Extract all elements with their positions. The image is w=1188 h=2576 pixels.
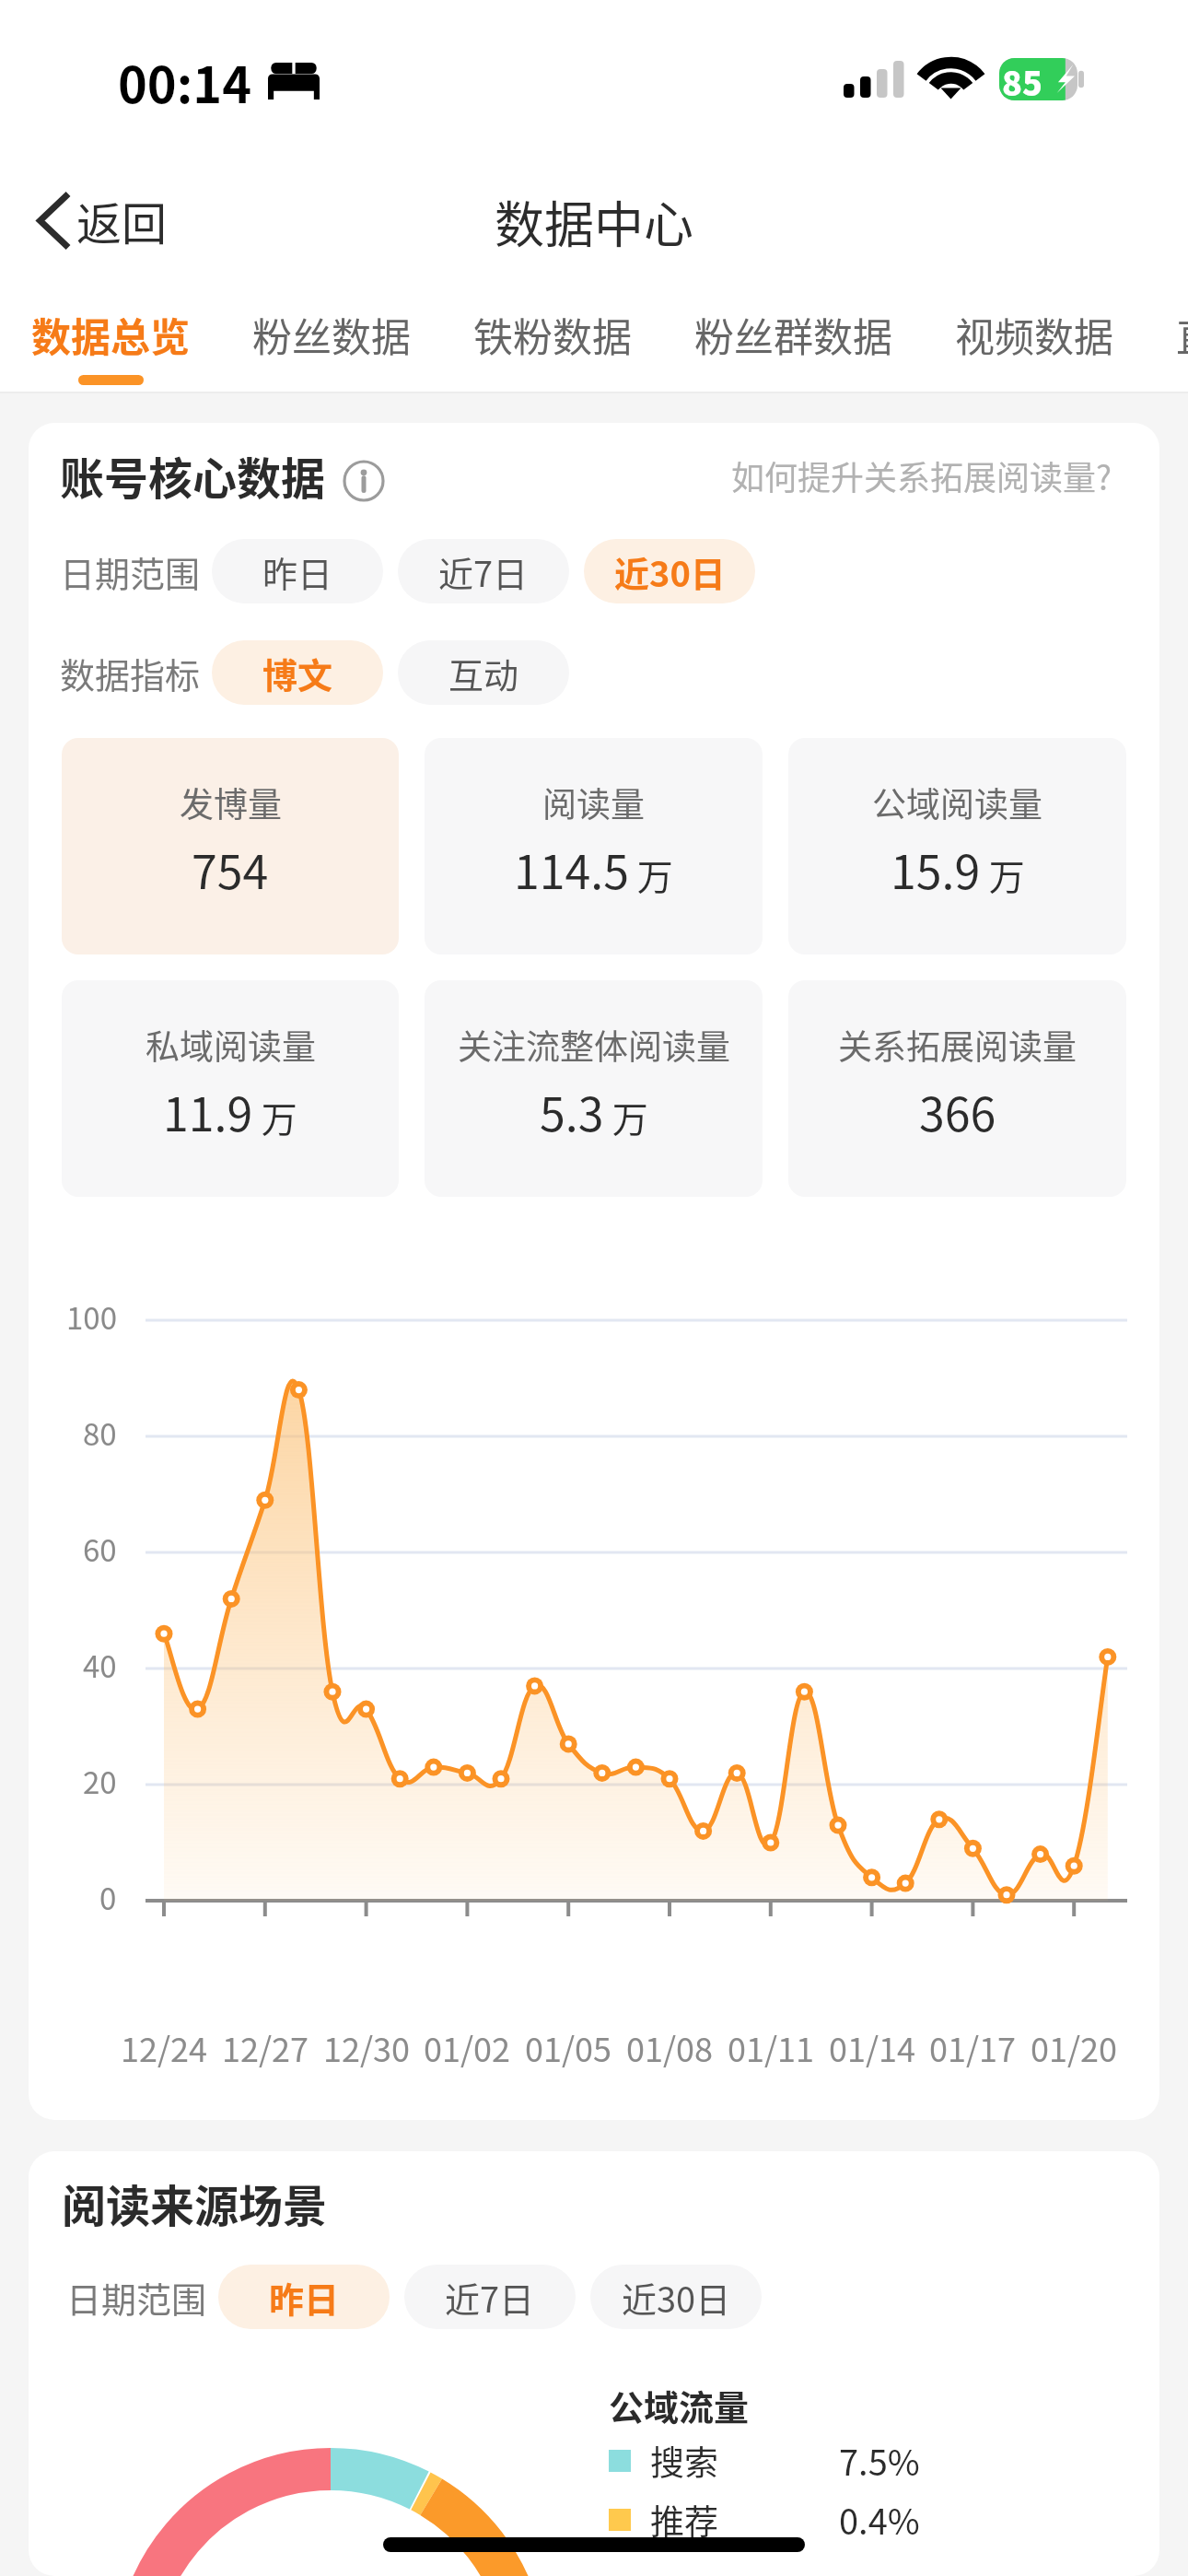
staticText: 粉丝数据 [252, 306, 411, 363]
staticText: 60 [83, 1527, 117, 1571]
button[interactable]: 关注流整体阅读量 [425, 980, 763, 1197]
button[interactable]: 粉丝群数据 [663, 306, 924, 375]
button[interactable]: 昨日 [212, 539, 383, 603]
staticText: 01/05 [525, 2023, 612, 2071]
button[interactable]: 粉丝数据 [221, 306, 442, 375]
staticText: 博文 [262, 648, 333, 698]
staticText: 近30日 [622, 2272, 731, 2323]
staticText: 私域阅读量 [146, 1020, 316, 1070]
button[interactable]: 近30日 [584, 539, 755, 603]
staticText: 视频数据 [955, 306, 1113, 363]
staticText: 昨日 [262, 546, 333, 597]
staticText: 366 [919, 1078, 996, 1144]
staticText: 粉丝群数据 [694, 306, 892, 363]
staticText: 数据总览 [31, 306, 190, 363]
button[interactable]: 公域阅读量 [788, 738, 1126, 954]
staticText: 12/24 [121, 2023, 208, 2071]
staticText: 关系拓展阅读量 [838, 1020, 1077, 1070]
staticText: 账号核心数据 [60, 443, 326, 508]
staticText: 11.9 [163, 1078, 253, 1144]
staticText: 万 [604, 1091, 648, 1142]
staticText: 20 [83, 1759, 117, 1803]
staticText: 数据指标 [60, 648, 201, 698]
staticText: 114.5 [514, 836, 629, 902]
staticText: 01/20 [1031, 2023, 1118, 2071]
button[interactable]: 视频数据 [924, 306, 1145, 375]
staticText: 85 [1002, 57, 1042, 105]
staticText: 万 [981, 849, 1025, 900]
staticText: 互动 [448, 648, 519, 698]
staticText: 日期范围 [66, 2272, 207, 2323]
button[interactable]: 昨日 [218, 2265, 390, 2329]
staticText: 返回 [76, 188, 168, 253]
button[interactable]: 博文 [212, 640, 383, 705]
staticText: 01/02 [424, 2023, 511, 2071]
button[interactable]: 互动 [398, 640, 569, 705]
staticText: 近7日 [445, 2272, 535, 2323]
staticText: 12/27 [222, 2023, 309, 2071]
staticText: 公域阅读量 [872, 778, 1042, 827]
button[interactable]: 说明 [343, 460, 385, 502]
staticText: 5.3 [540, 1078, 604, 1144]
staticText: 推荐 [650, 2495, 718, 2545]
staticText: 0.4% [839, 2494, 920, 2545]
staticText: 01/11 [728, 2023, 815, 2071]
staticText: 万 [629, 849, 673, 900]
staticText: 0 [99, 1875, 117, 1919]
staticText: 12/30 [323, 2023, 411, 2071]
staticText: 日期范围 [60, 546, 201, 597]
button[interactable]: 铁粉数据 [442, 306, 663, 375]
staticText: 公域流量 [609, 2380, 750, 2430]
button[interactable]: 阅读量 [425, 738, 763, 954]
staticText: 发博量 [180, 778, 282, 827]
staticText: 阅读量 [542, 778, 645, 827]
staticText: 01/08 [626, 2023, 714, 2071]
button[interactable]: 关系拓展阅读量 [788, 980, 1126, 1197]
staticText: 754 [192, 836, 269, 902]
staticText: 40 [83, 1643, 117, 1687]
button[interactable]: 直 [1145, 306, 1188, 375]
button[interactable]: 数据总览 [0, 306, 221, 385]
staticText: 80 [83, 1411, 117, 1455]
staticText: 关注流整体阅读量 [458, 1020, 730, 1070]
button[interactable]: 近30日 [590, 2265, 762, 2329]
button[interactable]: 私域阅读量 [62, 980, 399, 1197]
button[interactable]: 发博量 [62, 738, 399, 954]
staticText: 100 [66, 1294, 117, 1339]
staticText: 15.9 [891, 836, 981, 902]
staticText: 近30日 [614, 546, 726, 597]
staticText: 01/14 [829, 2023, 916, 2071]
staticText: 01/17 [929, 2023, 1017, 2071]
button[interactable]: 近7日 [404, 2265, 576, 2329]
button[interactable]: 近7日 [398, 539, 569, 603]
button[interactable]: 如何提升关系拓展阅读量? [731, 451, 1112, 499]
staticText: 00:14 [118, 45, 251, 117]
staticText: 7.5% [839, 2435, 920, 2486]
staticText: 阅读来源场景 [62, 2171, 328, 2235]
staticText: 数据中心 [495, 185, 693, 257]
staticText: 昨日 [269, 2272, 340, 2323]
button[interactable]: 返回 [26, 179, 184, 263]
staticText: 铁粉数据 [473, 306, 632, 363]
staticText: 搜索 [650, 2436, 718, 2486]
staticText: 近7日 [438, 546, 529, 597]
staticText: 万 [253, 1091, 297, 1142]
